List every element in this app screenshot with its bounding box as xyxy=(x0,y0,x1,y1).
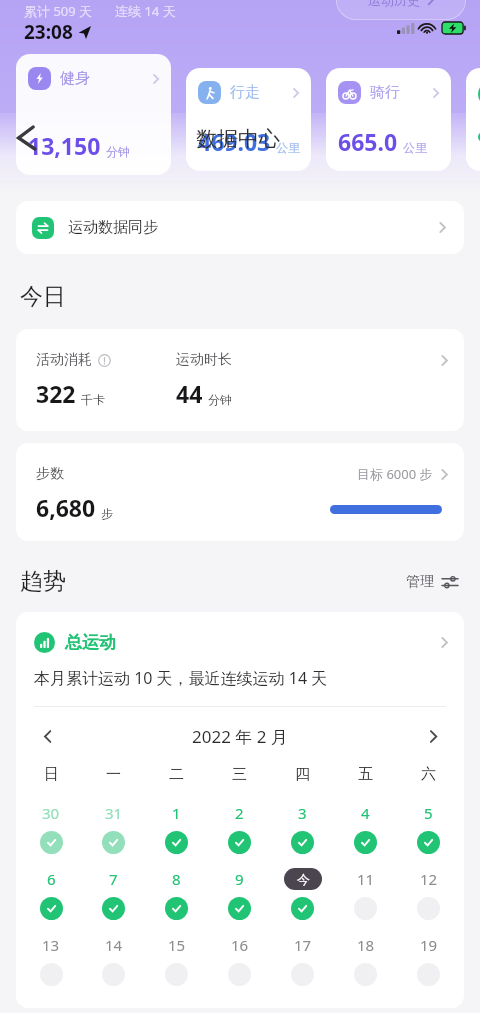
staticText: 连续 14 天 xyxy=(115,2,176,20)
button[interactable]: 4 xyxy=(334,802,397,854)
staticText: 12 xyxy=(420,869,438,889)
staticText: 公里 xyxy=(403,140,427,155)
staticText: 19 xyxy=(420,935,438,955)
staticText: 9 xyxy=(235,869,244,889)
staticText: 分钟 xyxy=(106,144,130,159)
button[interactable]: 11 xyxy=(334,868,397,920)
staticText: 23:08 xyxy=(24,19,73,45)
staticText: 18 xyxy=(357,935,375,955)
staticText: 4 xyxy=(361,803,370,823)
button[interactable]: 行走 xyxy=(186,68,311,171)
staticText: 骑行 xyxy=(370,83,400,102)
button[interactable]: 14 xyxy=(82,934,145,986)
staticText: 15 xyxy=(168,935,186,955)
button[interactable]: 管理 xyxy=(402,569,462,595)
staticText: 活动消耗 xyxy=(36,351,92,369)
staticText: 健身 xyxy=(60,69,90,88)
button[interactable]: 15 xyxy=(145,934,208,986)
button[interactable]: Next month xyxy=(414,717,452,755)
staticText: 2 xyxy=(235,803,244,823)
staticText: 运动历史 xyxy=(368,0,420,8)
staticText: 运动时长 xyxy=(176,351,232,369)
staticText: 累计 509 天 xyxy=(24,2,93,20)
staticText: 今 xyxy=(297,871,310,887)
button[interactable] xyxy=(466,68,480,171)
staticText: 6 xyxy=(47,869,56,889)
staticText: 665.0 xyxy=(338,126,398,157)
button[interactable]: 17 xyxy=(271,934,334,986)
staticText: 5 xyxy=(424,803,433,823)
button[interactable]: 12 xyxy=(397,868,460,920)
button[interactable]: 总运动 xyxy=(34,632,450,653)
button[interactable]: 今 xyxy=(271,868,334,920)
staticText: 17 xyxy=(294,935,312,955)
button[interactable]: 3 xyxy=(271,802,334,854)
button[interactable]: 19 xyxy=(397,934,460,986)
button[interactable]: Previous month xyxy=(28,717,66,755)
staticText: 13 xyxy=(42,935,60,955)
staticText: 三 xyxy=(232,765,247,784)
staticText: 3 xyxy=(298,803,307,823)
staticText: 四 xyxy=(295,765,310,784)
button[interactable]: 31 xyxy=(82,802,145,854)
button[interactable]: 5 xyxy=(397,802,460,854)
staticText: 7 xyxy=(109,869,118,889)
button[interactable]: 8 xyxy=(145,868,208,920)
staticText: 13,150 xyxy=(28,130,101,161)
staticText: 本月累计运动 10 天，最近连续运动 14 天 xyxy=(34,667,328,689)
staticText: 六 xyxy=(421,765,436,784)
staticText: 二 xyxy=(169,765,184,784)
button[interactable]: 运动历史 xyxy=(336,0,466,20)
staticText: 6,680 xyxy=(36,492,96,523)
staticText: 14 xyxy=(105,935,123,955)
button[interactable]: 30 xyxy=(20,802,82,854)
staticText: 31 xyxy=(105,803,123,823)
staticText: 公里 xyxy=(276,140,300,155)
button[interactable]: 步数 xyxy=(16,443,464,541)
button[interactable]: 活动消耗 xyxy=(16,329,464,431)
staticText: 一 xyxy=(106,765,121,784)
staticText: 11 xyxy=(357,869,375,889)
button[interactable]: 7 xyxy=(82,868,145,920)
staticText: 五 xyxy=(358,765,373,784)
staticText: 16 xyxy=(231,935,249,955)
staticText: 分钟 xyxy=(208,392,232,407)
staticText: 8 xyxy=(172,869,181,889)
button[interactable]: 运动数据同步 xyxy=(16,201,464,254)
button[interactable]: 1 xyxy=(145,802,208,854)
staticText: 管理 xyxy=(406,573,434,591)
staticText: 469.03 xyxy=(198,126,271,157)
staticText: 322 xyxy=(36,378,76,409)
button[interactable]: 2 xyxy=(208,802,271,854)
staticText: 日 xyxy=(44,765,59,784)
staticText: 30 xyxy=(42,803,60,823)
button[interactable]: 13 xyxy=(20,934,82,986)
staticText: 步 xyxy=(101,506,113,521)
staticText: 趋势 xyxy=(20,567,66,596)
staticText: 1 xyxy=(172,803,181,823)
button[interactable]: 健身 xyxy=(16,54,171,175)
staticText: 2022 年 2 月 xyxy=(192,725,288,748)
staticText: 44 xyxy=(176,378,203,409)
staticText: 运动数据同步 xyxy=(68,218,158,237)
button[interactable]: 16 xyxy=(208,934,271,986)
staticText: 行走 xyxy=(230,83,260,102)
staticText: 总运动 xyxy=(65,632,116,653)
staticText: 千卡 xyxy=(81,392,105,407)
button[interactable]: 骑行 xyxy=(326,68,451,171)
staticText: 今日 xyxy=(20,282,66,311)
button[interactable]: 6 xyxy=(20,868,82,920)
button[interactable]: 18 xyxy=(334,934,397,986)
staticText: 步数 xyxy=(36,465,64,483)
staticText: 目标 6000 步 xyxy=(357,465,433,483)
staticText: 数据中心 xyxy=(196,126,280,152)
button[interactable]: 9 xyxy=(208,868,271,920)
